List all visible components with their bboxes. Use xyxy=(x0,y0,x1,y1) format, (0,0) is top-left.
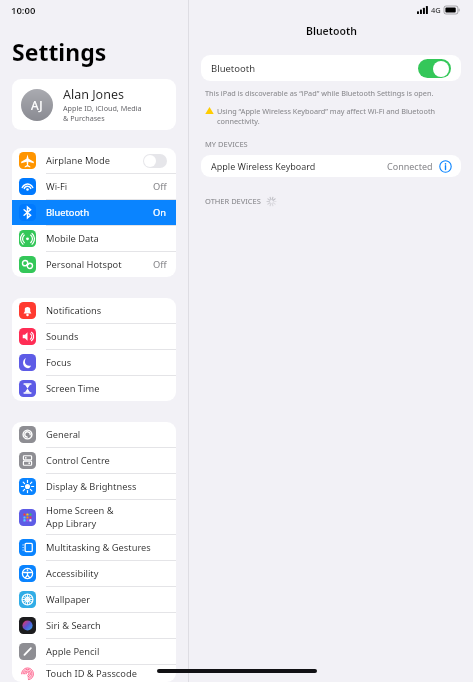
staticText: Using “Apple Wireless Keyboard” may affe… xyxy=(217,106,436,116)
staticText: Focus xyxy=(46,356,167,369)
staticText: Bluetooth xyxy=(46,206,153,219)
staticText: Mobile Data xyxy=(46,232,167,245)
staticText: Siri & Search xyxy=(46,619,167,632)
staticText: connectivity. xyxy=(217,116,260,126)
staticText: Touch ID & Passcode xyxy=(46,667,167,680)
button[interactable]: Sounds xyxy=(12,324,176,349)
staticText: Home Screen & xyxy=(46,504,114,517)
staticText: Wi-Fi xyxy=(46,180,153,193)
staticText: OTHER DEVICES xyxy=(205,196,261,206)
staticText: Display & Brightness xyxy=(46,480,167,493)
button[interactable]: Bluetooth xyxy=(12,200,176,225)
staticText: MY DEVICES xyxy=(205,139,248,149)
button[interactable]: Airplane Mode off xyxy=(143,154,167,168)
staticText: Notifications xyxy=(46,304,167,317)
staticText: General xyxy=(46,428,167,441)
button[interactable]: Home Screen & xyxy=(12,500,176,534)
button[interactable]: Airplane Mode xyxy=(12,148,176,173)
staticText: Airplane Mode xyxy=(46,154,143,167)
staticText: Accessibility xyxy=(46,567,167,580)
button[interactable]: Apple Pencil xyxy=(12,639,176,664)
staticText: Personal Hotspot xyxy=(46,258,153,271)
staticText: Off xyxy=(153,180,167,193)
staticText: Bluetooth xyxy=(211,62,418,75)
staticText: On xyxy=(153,206,167,219)
button[interactable]: Notifications xyxy=(12,298,176,323)
button[interactable]: More Info xyxy=(439,160,452,173)
staticText: 10:00 xyxy=(11,4,36,17)
button[interactable]: Screen Time xyxy=(12,376,176,401)
button[interactable]: Bluetooth on xyxy=(418,59,451,78)
button[interactable]: Personal Hotspot xyxy=(12,252,176,277)
staticText: Screen Time xyxy=(46,382,167,395)
staticText: Sounds xyxy=(46,330,167,343)
staticText: AJ xyxy=(31,97,43,113)
button[interactable]: Focus xyxy=(12,350,176,375)
staticText: This iPad is discoverable as “iPad” whil… xyxy=(205,88,434,98)
staticText: Off xyxy=(153,258,167,271)
button[interactable]: Multitasking & Gestures xyxy=(12,535,176,560)
button[interactable]: Accessibility xyxy=(12,561,176,586)
button[interactable]: Touch ID & Passcode xyxy=(12,665,176,682)
staticText: 4G xyxy=(431,5,441,15)
staticText: Apple Wireless Keyboard xyxy=(211,160,387,172)
button[interactable]: General xyxy=(12,422,176,447)
button[interactable]: Bluetooth xyxy=(201,55,461,81)
staticText: Alan Jones xyxy=(63,86,124,103)
button[interactable]: Mobile Data xyxy=(12,226,176,251)
staticText: & Purchases xyxy=(63,113,105,123)
staticText: Apple Pencil xyxy=(46,645,167,658)
staticText: Connected xyxy=(387,160,433,172)
button[interactable]: Wallpaper xyxy=(12,587,176,612)
staticText: Wallpaper xyxy=(46,593,167,606)
staticText: Control Centre xyxy=(46,454,167,467)
button[interactable]: Control Centre xyxy=(12,448,176,473)
staticText: App Library xyxy=(46,517,97,530)
staticText: Settings xyxy=(12,36,107,67)
staticText: Bluetooth xyxy=(306,24,357,38)
button[interactable]: Wi-Fi xyxy=(12,174,176,199)
button[interactable]: AJ xyxy=(12,79,176,130)
button[interactable]: Siri & Search xyxy=(12,613,176,638)
button[interactable]: Display & Brightness xyxy=(12,474,176,499)
staticText: Apple ID, iCloud, Media xyxy=(63,103,142,113)
staticText: Multitasking & Gestures xyxy=(46,541,167,554)
button[interactable]: Apple Wireless Keyboard xyxy=(201,155,461,177)
